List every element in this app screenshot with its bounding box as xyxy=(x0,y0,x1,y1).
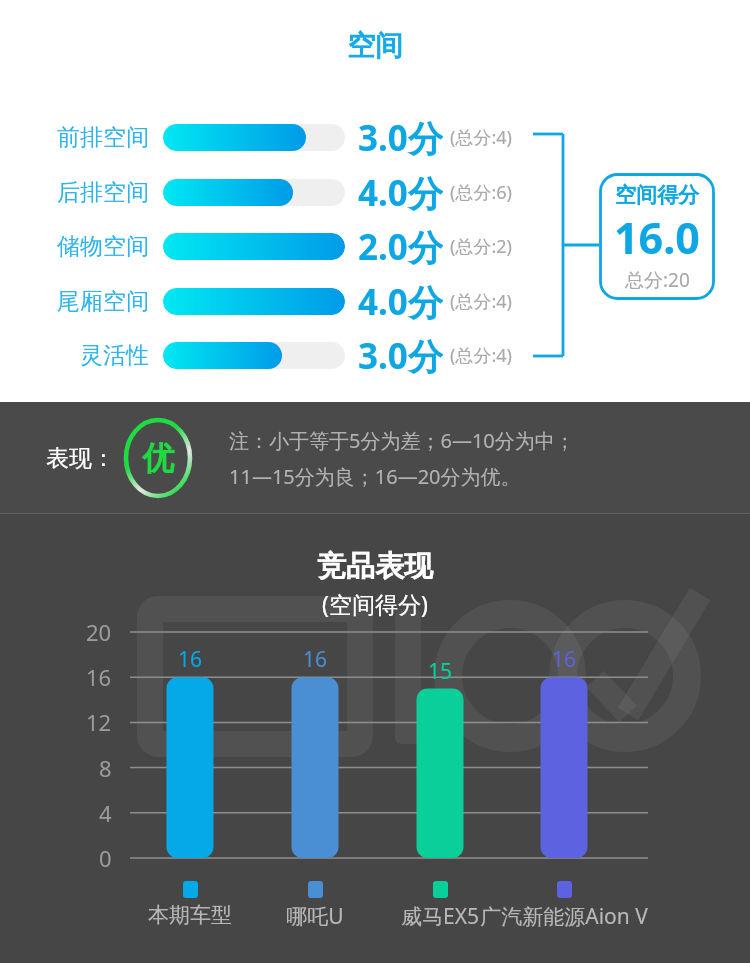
other: 评级：优 xyxy=(117,416,199,500)
staticText: 本期车型 xyxy=(148,902,232,928)
staticText: 4 xyxy=(99,798,112,828)
staticText: 12 xyxy=(86,707,112,737)
button[interactable]: 前排空间 xyxy=(0,114,750,160)
button[interactable]: 尾厢空间 xyxy=(0,278,750,324)
staticText: 竞品表现 xyxy=(0,548,750,585)
staticText: 4.0分 xyxy=(358,169,443,215)
staticText: 威马EX5 xyxy=(401,902,479,931)
staticText: 优 xyxy=(142,438,174,478)
staticText: 前排空间 xyxy=(57,123,149,152)
staticText: (总分:4) xyxy=(450,125,512,150)
staticText: 广汽新能源Aion V xyxy=(480,902,648,931)
staticText: 2.0分 xyxy=(358,223,443,269)
button[interactable]: 本期车型 xyxy=(90,902,290,928)
staticText: (空间得分) xyxy=(0,588,750,619)
staticText: 尾厢空间 xyxy=(57,287,149,316)
button[interactable]: 后排空间 xyxy=(0,169,750,215)
button[interactable]: 威马EX5 xyxy=(340,902,540,931)
staticText: (总分:2) xyxy=(450,234,512,259)
staticText: 表现： xyxy=(46,444,115,473)
staticText: (总分:6) xyxy=(450,180,512,205)
staticText: 储物空间 xyxy=(57,232,149,261)
staticText: 8 xyxy=(99,753,112,783)
staticText: 空间 xyxy=(0,28,750,63)
button[interactable]: 灵活性 xyxy=(0,332,750,378)
staticText: 16.0 xyxy=(614,208,700,267)
button[interactable]: 储物空间 xyxy=(0,223,750,269)
staticText: 哪吒U xyxy=(286,902,344,931)
staticText: 15 xyxy=(428,657,453,686)
staticText: 11—15分为良；16—20分为优。 xyxy=(229,463,521,490)
staticText: (总分:4) xyxy=(450,343,512,368)
staticText: 空间得分 xyxy=(615,182,699,208)
staticText: 16 xyxy=(178,645,203,674)
staticText: 16 xyxy=(303,645,328,674)
staticText: 16 xyxy=(552,645,577,674)
staticText: 0 xyxy=(99,843,112,873)
staticText: 灵活性 xyxy=(80,341,149,370)
staticText: 总分:20 xyxy=(625,267,690,293)
button[interactable]: 哪吒U xyxy=(215,902,415,931)
staticText: 3.0分 xyxy=(358,332,443,378)
staticText: 16 xyxy=(86,662,112,692)
button[interactable]: 广汽新能源Aion V xyxy=(464,902,664,931)
staticText: 4.0分 xyxy=(358,278,443,324)
staticText: 后排空间 xyxy=(57,178,149,207)
staticText: 3.0分 xyxy=(358,114,443,160)
staticText: (总分:4) xyxy=(450,289,512,314)
staticText: 20 xyxy=(86,617,112,647)
staticText: 注：小于等于5分为差；6—10分为中； xyxy=(229,427,575,454)
button[interactable]: 空间得分 xyxy=(599,173,715,300)
